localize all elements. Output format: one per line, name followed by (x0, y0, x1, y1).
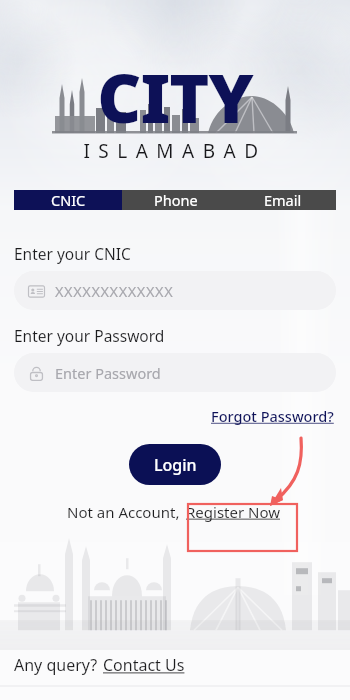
staticText: CNIC (51, 190, 86, 210)
staticText: Email (264, 190, 302, 210)
button[interactable]: Enter Password (14, 353, 336, 392)
staticText: XXXXXXXXXXXXX (55, 281, 174, 301)
button[interactable]: Login (129, 444, 221, 485)
button[interactable]: Phone (122, 190, 229, 210)
staticText: Enter your CNIC (14, 243, 131, 264)
button[interactable]: Forgot Password? (209, 404, 336, 428)
staticText: Phone (154, 190, 198, 210)
staticText: Register Now (186, 502, 281, 522)
staticText: Any query? (14, 654, 102, 676)
staticText: Forgot Password? (211, 406, 334, 426)
button[interactable]: CNIC (14, 190, 122, 210)
staticText: Login (154, 454, 197, 476)
button[interactable]: Email (229, 190, 336, 210)
button[interactable]: Register Now (184, 501, 283, 523)
staticText: Not an Account, (67, 502, 184, 522)
staticText: ISLAMABAD (83, 138, 267, 164)
staticText: CITY (97, 50, 253, 143)
button[interactable]: Contact Us (102, 654, 186, 676)
staticText: Enter your Password (14, 325, 165, 346)
staticText: Contact Us (103, 654, 185, 676)
staticText: Enter Password (55, 363, 161, 383)
button[interactable]: XXXXXXXXXXXXX (14, 271, 336, 310)
